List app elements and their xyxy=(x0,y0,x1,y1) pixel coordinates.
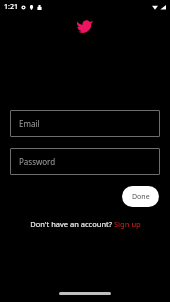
other: Logo xyxy=(77,19,93,33)
staticText: Don't have an account? Sign up xyxy=(30,219,141,229)
staticText: 1:21 xyxy=(4,2,18,12)
staticText: Done xyxy=(132,192,150,202)
button[interactable]: Password xyxy=(10,148,160,175)
button[interactable]: Don't have an account? Sign up xyxy=(26,217,145,231)
staticText: Password xyxy=(19,156,56,167)
button[interactable]: Done xyxy=(122,186,159,207)
staticText: Email xyxy=(19,118,40,129)
button[interactable]: Email xyxy=(10,110,160,137)
